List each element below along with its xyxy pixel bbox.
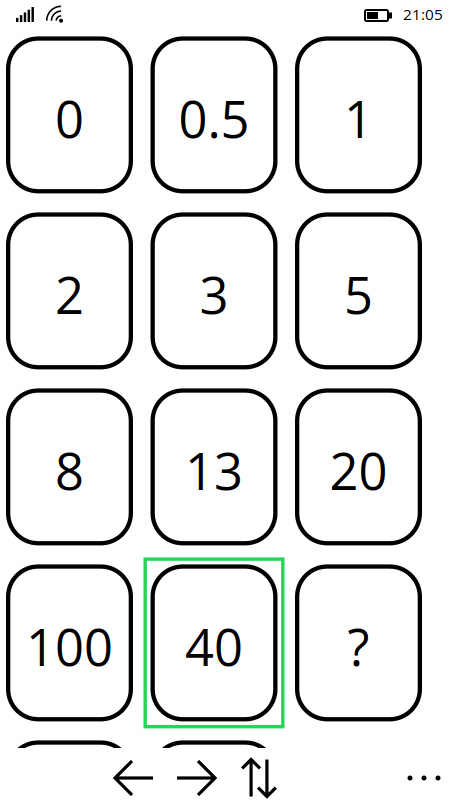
button[interactable]: Sort xyxy=(229,748,289,808)
staticText: 20 xyxy=(329,436,387,505)
button[interactable]: 0.5 xyxy=(150,36,277,193)
button[interactable]: 2 xyxy=(6,212,133,369)
button[interactable]: 5 xyxy=(295,212,422,369)
staticText: 100 xyxy=(26,612,113,681)
staticText: 5 xyxy=(344,260,373,329)
button[interactable]: 8 xyxy=(6,388,133,545)
staticText: 2 xyxy=(55,260,84,329)
button[interactable]: More xyxy=(394,748,454,808)
staticText: ☕ xyxy=(182,793,245,810)
staticText: 3 xyxy=(199,260,228,329)
button[interactable]: 13 xyxy=(150,388,277,545)
button[interactable]: 100 xyxy=(6,564,133,721)
button[interactable]: 3 xyxy=(150,212,277,369)
staticText: 0 xyxy=(55,84,84,153)
staticText: 0.5 xyxy=(178,84,249,153)
staticText: 21:05 xyxy=(403,3,443,24)
staticText: 40 xyxy=(185,612,243,681)
button[interactable]: Previous xyxy=(104,748,164,808)
button[interactable]: ? xyxy=(295,564,422,721)
button[interactable]: Next xyxy=(166,748,226,808)
staticText: 13 xyxy=(185,436,243,505)
button[interactable]: 20 xyxy=(295,388,422,545)
button[interactable]: 40 xyxy=(150,564,277,721)
staticText: 8 xyxy=(55,436,84,505)
button[interactable]: ☕ xyxy=(150,740,277,810)
staticText: ? xyxy=(347,612,369,681)
button[interactable]: 1 xyxy=(295,36,422,193)
button[interactable]: ∞ xyxy=(6,740,133,810)
button[interactable]: 0 xyxy=(6,36,133,193)
staticText: 1 xyxy=(344,84,373,153)
